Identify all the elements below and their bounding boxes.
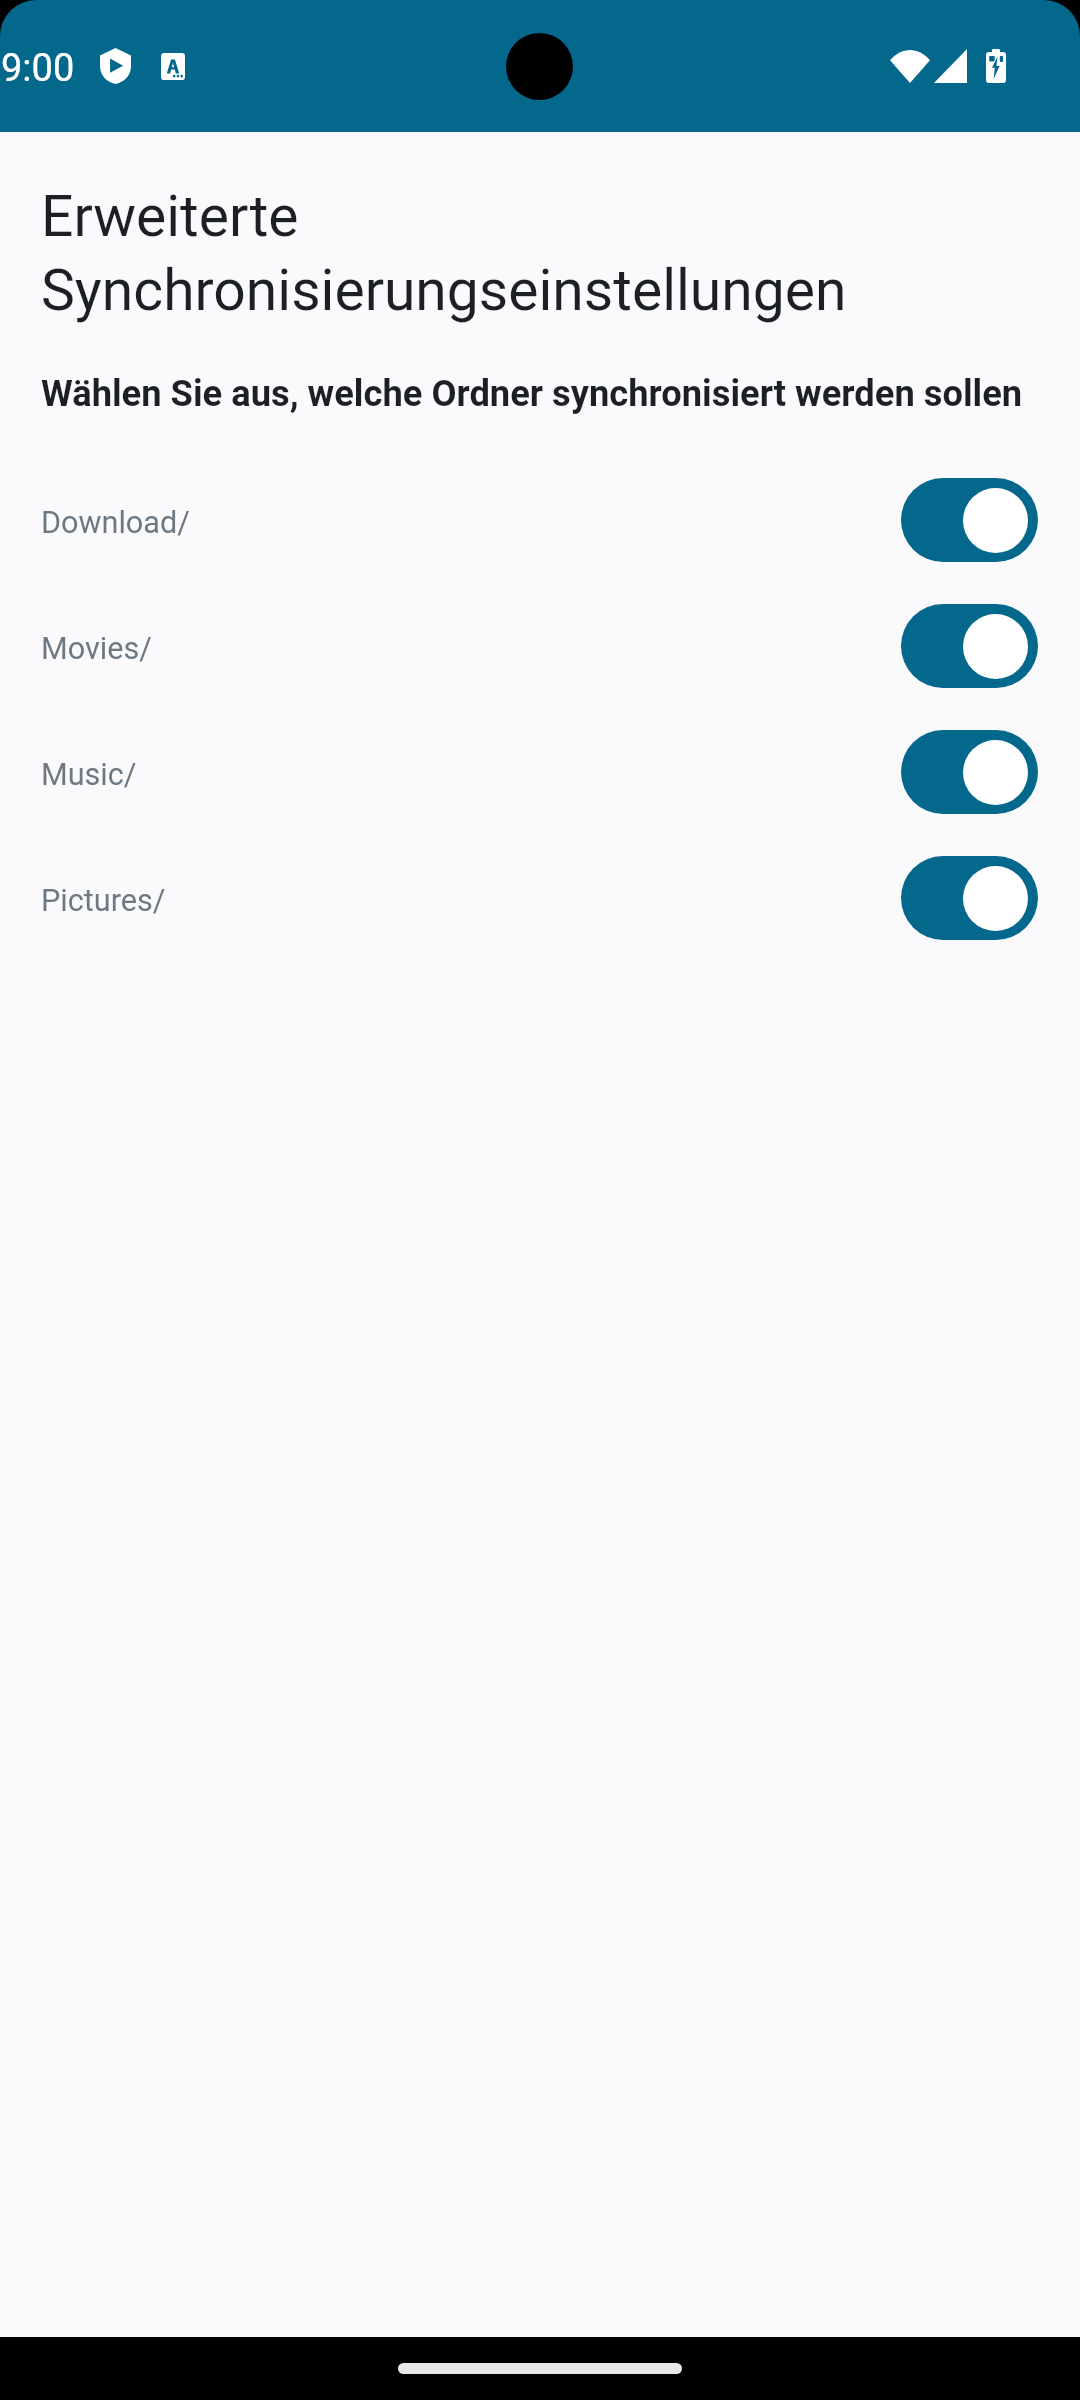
button[interactable]: Download/ <box>0 457 1080 583</box>
button[interactable]: Music/ <box>0 709 1080 835</box>
staticText: Movies/ <box>41 630 152 666</box>
button[interactable]: Movies/ <box>0 583 1080 709</box>
staticText: Pictures/ <box>41 882 166 918</box>
staticText: Wählen Sie aus, welche Ordner synchronis… <box>41 371 1023 415</box>
button[interactable]: Synchronisierung für Music/ aktiviert <box>901 730 1038 814</box>
button[interactable]: Synchronisierung für Movies/ aktiviert <box>901 604 1038 688</box>
staticText: Download/ <box>41 504 190 540</box>
staticText: 9:00 <box>1 45 75 90</box>
button[interactable]: Synchronisierung für Pictures/ aktiviert <box>901 856 1038 940</box>
staticText: Music/ <box>41 756 137 792</box>
button[interactable]: Synchronisierung für Download/ aktiviert <box>901 478 1038 562</box>
staticText: Erweiterte Synchronisierungseinstellunge… <box>41 177 930 325</box>
button[interactable]: Pictures/ <box>0 835 1080 961</box>
